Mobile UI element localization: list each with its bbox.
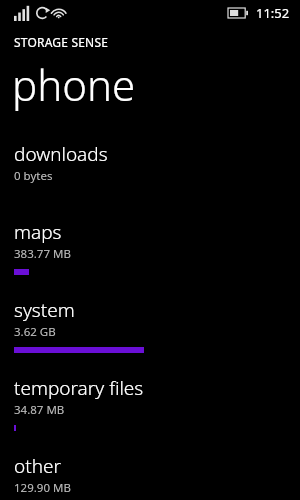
staticText: system	[14, 297, 75, 323]
button[interactable]: STORAGE SENSE	[0, 34, 300, 50]
staticText: downloads	[14, 141, 108, 167]
staticText: other	[14, 453, 61, 479]
other: Signal, data and Wi-Fi status	[14, 5, 90, 21]
staticText: 34.87 MB	[14, 402, 65, 418]
staticText: phone	[12, 56, 136, 113]
staticText: temporary files	[14, 375, 144, 401]
button[interactable]: downloads	[0, 139, 300, 199]
button[interactable]: other	[0, 451, 300, 500]
button[interactable]: maps	[0, 217, 300, 277]
button[interactable]: system	[0, 295, 300, 355]
staticText: 3.62 GB	[14, 324, 56, 340]
staticText: maps	[14, 219, 62, 245]
button[interactable]: temporary files	[0, 373, 300, 433]
staticText: 11:52	[256, 4, 290, 22]
staticText: 383.77 MB	[14, 246, 71, 262]
staticText: STORAGE SENSE	[14, 34, 109, 50]
staticText: 0 bytes	[14, 168, 53, 184]
other: Battery	[228, 8, 248, 18]
staticText: 129.90 MB	[14, 480, 71, 496]
